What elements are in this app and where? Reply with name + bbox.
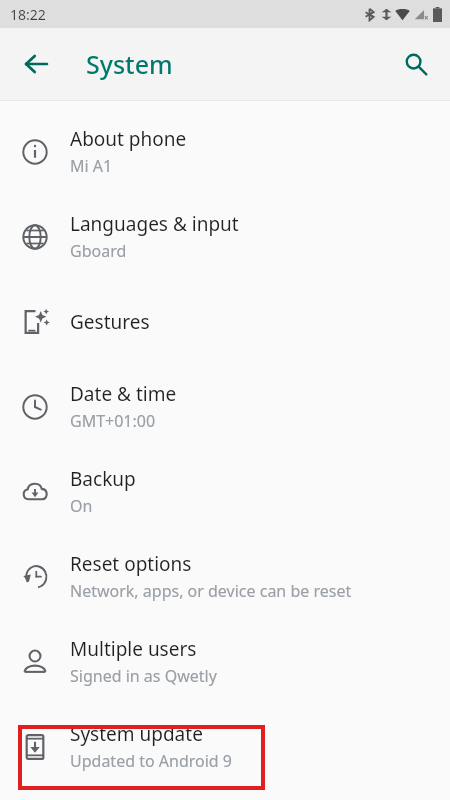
- staticText: Signed in as Qwetly: [70, 665, 217, 687]
- staticText: On: [70, 495, 93, 517]
- staticText: GMT+01:00: [70, 410, 156, 432]
- button[interactable]: Languages & input: [0, 194, 450, 279]
- staticText: System: [86, 47, 173, 81]
- staticText: Updated to Android 9: [70, 750, 232, 772]
- staticText: Reset options: [70, 551, 192, 577]
- staticText: Gestures: [70, 309, 150, 335]
- staticText: About phone: [70, 126, 187, 152]
- staticText: 18:22: [10, 5, 46, 24]
- staticText: Backup: [70, 466, 136, 492]
- button[interactable]: Back: [12, 40, 60, 88]
- button[interactable]: Multiple users: [0, 619, 450, 704]
- button[interactable]: System update: [0, 704, 450, 789]
- staticText: Mi A1: [70, 155, 113, 177]
- button[interactable]: Date & time: [0, 364, 450, 449]
- button[interactable]: Reset options: [0, 534, 450, 619]
- staticText: Gboard: [70, 240, 127, 262]
- button[interactable]: Backup: [0, 449, 450, 534]
- staticText: Languages & input: [70, 211, 239, 237]
- staticText: Network, apps, or device can be reset: [70, 580, 352, 602]
- staticText: Date & time: [70, 381, 177, 407]
- staticText: Multiple users: [70, 636, 197, 662]
- button[interactable]: About phone: [0, 109, 450, 194]
- staticText: System update: [70, 721, 203, 747]
- button[interactable]: Search: [392, 40, 440, 88]
- button[interactable]: Gestures: [0, 279, 450, 364]
